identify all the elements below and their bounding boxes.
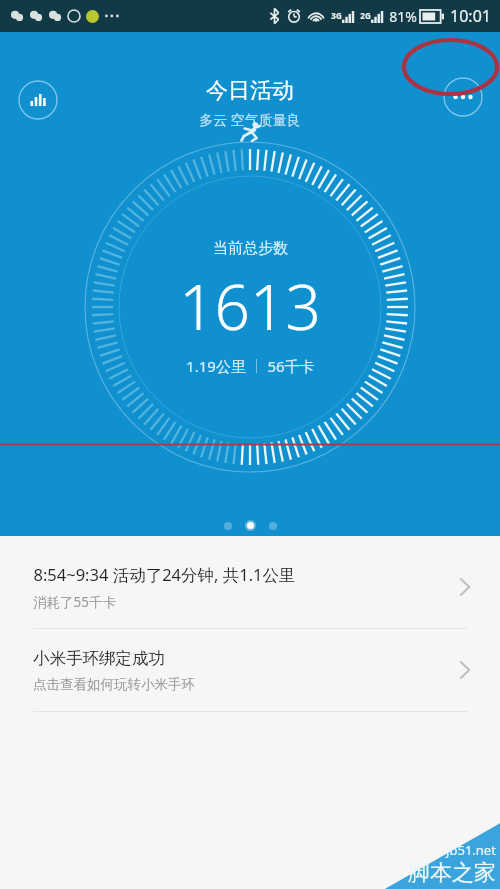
staticText: 今日活动 [206,77,294,105]
button[interactable]: 小米手环绑定成功 [0,629,500,711]
staticText: 81% [389,7,417,26]
staticText: 脚本之家 [408,859,496,887]
staticText: 3G [331,10,342,21]
staticText: 56千卡 [267,356,315,376]
button[interactable]: 8:54~9:34 活动了24分钟, 共1.1公里 [0,546,500,628]
staticText: 多云 空气质量良 [199,110,301,129]
staticText: 当前总步数 [213,239,288,258]
staticText: 8:54~9:34 活动了24分钟, 共1.1公里 [33,563,296,586]
staticText: jb51.net [446,841,496,859]
button[interactable]: Statistics [18,80,58,120]
staticText: 2G [360,10,371,21]
staticText: 小米手环绑定成功 [33,648,165,669]
staticText: 1.19公里 [186,356,246,376]
staticText: 点击查看如何玩转小米手环 [33,676,195,693]
staticText: 消耗了55千卡 [33,593,116,611]
staticText: 1613 [179,264,321,348]
staticText: 10:01 [450,5,491,27]
button[interactable]: More options [443,77,483,117]
